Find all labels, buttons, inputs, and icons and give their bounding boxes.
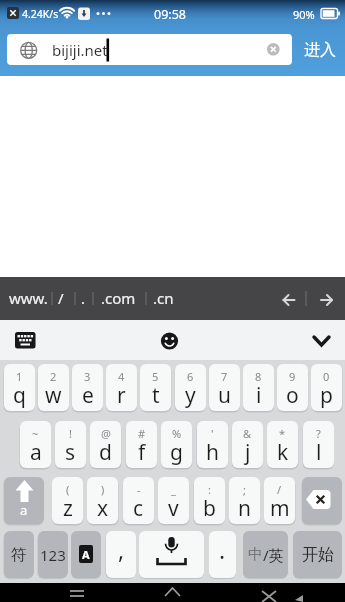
- staticText: w: [45, 381, 62, 410]
- staticText: 8: [255, 369, 262, 384]
- button[interactable]: 8: [243, 364, 274, 411]
- button[interactable]: :: [194, 477, 225, 524]
- button[interactable]: .cn: [147, 277, 195, 320]
- staticText: g: [170, 438, 183, 467]
- button[interactable]: A: [71, 531, 101, 578]
- button[interactable]: [230, 583, 345, 602]
- button[interactable]: #: [126, 421, 157, 468]
- staticText: h: [206, 438, 219, 467]
- button[interactable]: [155, 326, 185, 354]
- staticText: &: [243, 426, 252, 441]
- staticText: .: [219, 534, 226, 565]
- button[interactable]: (: [52, 477, 83, 524]
- button[interactable]: %: [161, 421, 192, 468]
- button[interactable]: 3: [72, 364, 103, 411]
- button[interactable]: ?: [303, 421, 334, 468]
- staticText: .com: [101, 288, 136, 308]
- button[interactable]: ~: [20, 421, 51, 468]
- button[interactable]: 进入: [294, 30, 345, 70]
- button[interactable]: /: [264, 477, 295, 524]
- staticText: *: [279, 426, 286, 441]
- staticText: 5: [152, 369, 159, 384]
- button[interactable]: [310, 277, 345, 320]
- staticText: ?: [316, 426, 321, 441]
- button[interactable]: .: [75, 277, 123, 320]
- staticText: bijiji.net: [52, 40, 108, 60]
- button[interactable]: 123: [38, 531, 68, 578]
- staticText: t: [152, 381, 160, 410]
- button[interactable]: ;: [229, 477, 260, 524]
- button[interactable]: 符: [4, 531, 34, 578]
- button[interactable]: *: [267, 421, 298, 468]
- button[interactable]: a: [4, 477, 44, 524]
- button[interactable]: [139, 531, 204, 578]
- staticText: 开始: [302, 545, 334, 565]
- staticText: ;: [243, 482, 246, 497]
- button[interactable]: [0, 583, 115, 602]
- button[interactable]: bijiji.net: [7, 34, 292, 65]
- button[interactable]: [305, 326, 339, 354]
- staticText: q: [13, 381, 26, 410]
- staticText: .cn: [153, 288, 174, 308]
- staticText: ': [211, 426, 214, 441]
- staticText: :: [208, 482, 211, 497]
- button[interactable]: &: [232, 421, 263, 468]
- button[interactable]: [272, 277, 306, 320]
- staticText: j: [245, 438, 251, 467]
- button[interactable]: 6: [175, 364, 206, 411]
- button[interactable]: ': [197, 421, 228, 468]
- staticText: d: [99, 438, 112, 467]
- staticText: ,: [118, 534, 125, 565]
- button[interactable]: -: [123, 477, 154, 524]
- button[interactable]: .: [209, 531, 236, 578]
- button[interactable]: ,: [106, 531, 136, 578]
- button[interactable]: www.: [3, 277, 51, 320]
- staticText: i: [256, 381, 262, 410]
- button[interactable]: .com: [95, 277, 143, 320]
- button[interactable]: 开始: [293, 531, 342, 578]
- staticText: b: [203, 494, 216, 523]
- staticText: 符: [11, 545, 27, 565]
- staticText: 90%: [293, 7, 315, 22]
- staticText: x: [97, 494, 109, 523]
- staticText: a: [30, 438, 42, 467]
- staticText: 4.24K/s: [22, 7, 59, 21]
- button[interactable]: 7: [209, 364, 240, 411]
- button[interactable]: ): [87, 477, 118, 524]
- staticText: 中: [248, 545, 263, 564]
- staticText: s: [65, 438, 76, 467]
- staticText: 7: [221, 369, 228, 384]
- staticText: 3: [84, 369, 91, 384]
- staticText: %: [172, 426, 182, 441]
- button[interactable]: 1: [4, 364, 35, 411]
- staticText: 123: [40, 545, 66, 565]
- button[interactable]: !: [55, 421, 86, 468]
- staticText: !: [69, 426, 72, 441]
- staticText: r: [117, 381, 126, 410]
- button[interactable]: 9: [277, 364, 308, 411]
- button[interactable]: 4: [106, 364, 137, 411]
- button[interactable]: [8, 326, 42, 354]
- button[interactable]: 0: [311, 364, 342, 411]
- staticText: @: [101, 426, 111, 441]
- staticText: #: [138, 426, 146, 441]
- staticText: l: [316, 438, 322, 467]
- staticText: e: [82, 381, 94, 410]
- staticText: n: [238, 494, 251, 523]
- button[interactable]: 2: [38, 364, 69, 411]
- staticText: .: [81, 288, 86, 308]
- staticText: 09:58: [154, 6, 186, 23]
- button[interactable]: _: [158, 477, 189, 524]
- staticText: /英: [263, 545, 284, 565]
- staticText: 0: [323, 369, 330, 384]
- staticText: v: [168, 494, 179, 523]
- button[interactable]: 中: [243, 531, 288, 578]
- button[interactable]: @: [90, 421, 121, 468]
- button[interactable]: 5: [140, 364, 171, 411]
- button[interactable]: [302, 477, 342, 524]
- staticText: ~: [32, 426, 39, 441]
- button[interactable]: [115, 583, 230, 602]
- staticText: z: [63, 494, 73, 523]
- button[interactable]: /: [52, 277, 100, 320]
- staticText: (: [66, 482, 70, 497]
